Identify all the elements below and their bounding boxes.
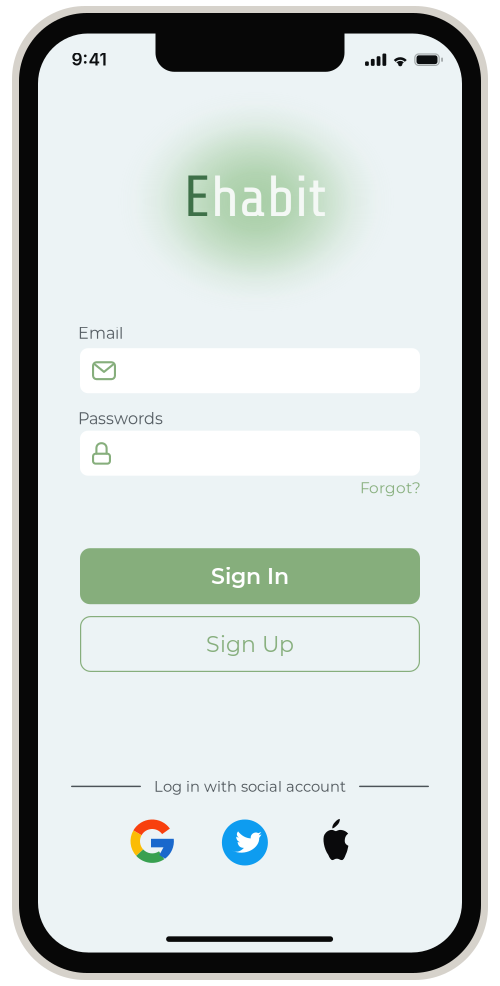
staticText: Forgot? — [360, 478, 421, 497]
staticText: E — [183, 166, 210, 230]
staticText: Sign In — [211, 563, 289, 590]
staticText: Passwords — [78, 409, 163, 428]
staticText: Log in with social account — [154, 777, 346, 795]
staticText: habit — [210, 166, 326, 230]
button[interactable]: Continue with Google — [130, 819, 174, 863]
staticText: 9:41 — [71, 49, 106, 70]
button[interactable]: Continue with Apple — [316, 818, 352, 864]
button[interactable]: Continue with Twitter — [222, 819, 268, 865]
button[interactable]: Sign Up — [80, 616, 420, 672]
button[interactable]: Forgot? — [360, 478, 421, 497]
staticText: Sign Up — [206, 631, 294, 657]
button[interactable]: Sign In — [80, 548, 420, 604]
staticText: Email — [78, 323, 123, 343]
